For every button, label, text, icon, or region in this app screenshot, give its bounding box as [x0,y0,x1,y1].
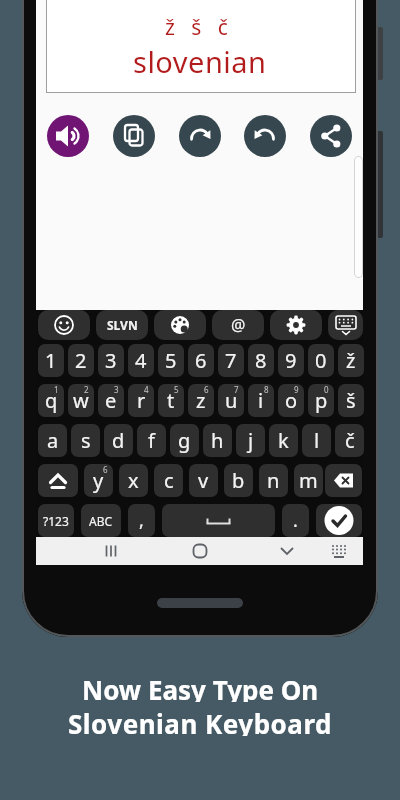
button[interactable]: y [84,464,113,497]
staticText: š [346,387,356,414]
staticText: 2 [75,347,87,374]
staticText: g [178,427,191,454]
button[interactable] [324,537,354,565]
button[interactable]: 4 [128,344,154,377]
staticText: Now Easy Type On [82,672,319,702]
button[interactable]: h [203,424,232,457]
button[interactable]: u [218,384,244,417]
button[interactable]: x [119,464,148,497]
staticText: q [45,387,58,414]
staticText: t [167,387,175,414]
button[interactable] [179,115,221,157]
button[interactable]: r [128,384,154,417]
staticText: b [232,467,245,494]
button[interactable]: g [170,424,199,457]
staticText: m [299,467,318,494]
button[interactable]: SLVN [96,310,148,340]
button[interactable]: z [188,384,214,417]
staticText: 8 [264,384,269,395]
button[interactable] [38,310,90,340]
button[interactable] [38,464,78,497]
button[interactable]: w [68,384,94,417]
staticText: 9 [294,384,299,395]
staticText: w [73,387,89,414]
button[interactable]: @ [212,310,264,340]
button[interactable]: 8 [248,344,274,377]
button[interactable]: j [236,424,265,457]
button[interactable]: č [335,424,364,457]
staticText: SLVN [107,317,138,333]
button[interactable]: e [98,384,124,417]
button[interactable] [316,504,362,537]
button[interactable]: ?123 [38,504,74,537]
staticText: v [198,467,209,494]
staticText: 1 [45,347,57,374]
staticText: 6 [204,384,209,395]
button[interactable] [310,115,352,157]
button[interactable] [325,464,362,497]
staticText: 0 [324,384,329,395]
staticText: 8 [255,347,267,374]
staticText: Slovenian Keyboard [68,706,332,736]
staticText: p [315,387,328,414]
staticText: i [258,387,264,414]
staticText: slovenian [133,42,267,76]
staticText: . [293,508,298,533]
button[interactable]: c [154,464,183,497]
button[interactable] [47,115,89,157]
staticText: 9 [285,347,297,374]
staticText: f [148,427,155,454]
button[interactable] [244,115,286,157]
button[interactable]: p [308,384,334,417]
button[interactable] [154,310,206,340]
button[interactable] [272,537,302,565]
staticText: n [267,467,280,494]
staticText: 3 [105,347,117,374]
button[interactable]: 0 [308,344,334,377]
button[interactable]: q [38,384,64,417]
button[interactable]: b [224,464,253,497]
button[interactable]: i [248,384,274,417]
staticText: o [285,387,298,414]
button[interactable] [328,310,363,340]
staticText: h [211,427,224,454]
button[interactable]: 2 [68,344,94,377]
button[interactable]: 1 [38,344,64,377]
button[interactable]: t [158,384,184,417]
staticText: k [278,427,289,454]
staticText: 5 [165,347,177,374]
button[interactable]: ž [338,344,364,377]
button[interactable] [162,504,275,537]
button[interactable]: f [137,424,166,457]
button[interactable] [185,537,215,565]
button[interactable]: m [294,464,323,497]
button[interactable]: k [269,424,298,457]
button[interactable]: s [71,424,100,457]
button[interactable]: a [38,424,67,457]
button[interactable]: . [282,504,309,537]
staticText: č [345,427,355,454]
staticText: y [93,467,104,494]
button[interactable]: v [189,464,218,497]
button[interactable]: 7 [218,344,244,377]
staticText: 6 [103,464,108,475]
button[interactable]: 3 [98,344,124,377]
button[interactable]: l [302,424,331,457]
staticText: 7 [234,384,239,395]
button[interactable] [270,310,322,340]
staticText: ž š č [165,13,234,42]
button[interactable]: o [278,384,304,417]
button[interactable] [96,537,126,565]
staticText: d [112,427,125,454]
button[interactable]: ABC [81,504,121,537]
button[interactable]: d [104,424,133,457]
staticText: 4 [144,384,149,395]
button[interactable]: 6 [188,344,214,377]
button[interactable] [113,115,155,157]
button[interactable]: 9 [278,344,304,377]
button[interactable]: 5 [158,344,184,377]
staticText: e [105,387,117,414]
button[interactable]: š [338,384,364,417]
button[interactable]: , [128,504,155,537]
button[interactable]: n [259,464,288,497]
